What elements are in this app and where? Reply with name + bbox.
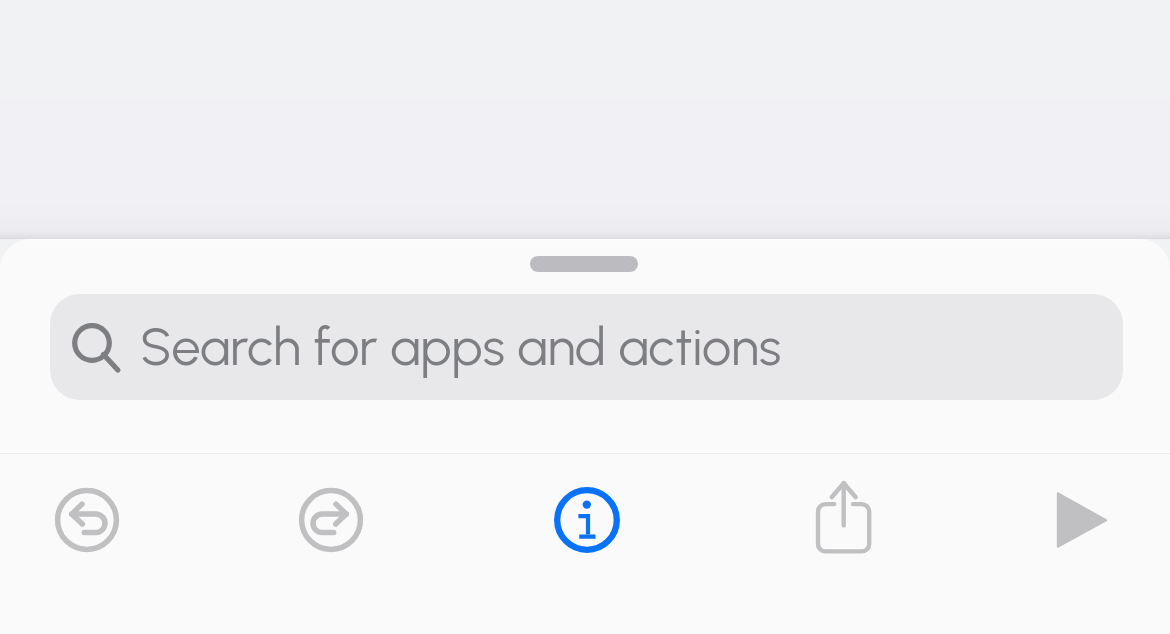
button[interactable]: Info: [539, 472, 635, 568]
staticText: Search for apps and actions: [140, 316, 782, 378]
button[interactable]: Drag handle: [530, 256, 638, 272]
button[interactable]: Search for apps and actions: [50, 294, 1123, 400]
button[interactable]: Undo: [39, 472, 135, 568]
button[interactable]: Play: [1034, 472, 1130, 568]
button[interactable]: Share: [796, 472, 892, 568]
button[interactable]: Redo: [283, 472, 379, 568]
